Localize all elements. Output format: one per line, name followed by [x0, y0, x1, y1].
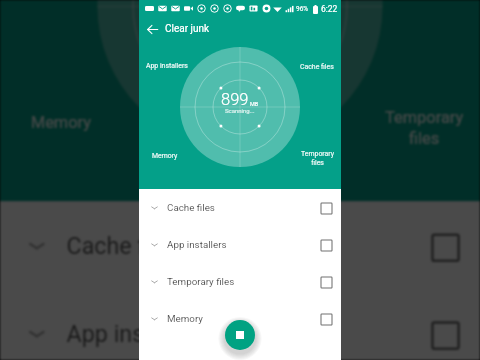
staticText: App installers: [146, 62, 188, 70]
staticText: MB: [250, 101, 259, 107]
button[interactable]: Stop scanning: [225, 320, 255, 350]
staticText: 899: [195, 0, 261, 11]
button[interactable]: Select Temporary files: [319, 275, 333, 289]
button[interactable]: Temporary files: [139, 263, 341, 300]
staticText: Clear junk: [165, 23, 210, 35]
staticText: Temporary files: [167, 276, 235, 287]
staticText: Memory: [31, 113, 93, 132]
staticText: Temporary files: [385, 109, 463, 147]
button[interactable]: Memory: [139, 300, 341, 337]
staticText: 899: [221, 90, 249, 109]
button[interactable]: Select Cache files: [428, 230, 461, 263]
staticText: App installers: [66, 320, 209, 346]
staticText: App installers: [167, 239, 227, 250]
button[interactable]: App installers: [0, 289, 480, 360]
staticText: 6:22: [321, 4, 338, 14]
staticText: Memory: [152, 152, 178, 160]
staticText: Scanning...: [225, 107, 255, 114]
button[interactable]: Select App installers: [319, 238, 333, 252]
button[interactable]: Select App installers: [428, 318, 461, 351]
staticText: Temporary files: [301, 150, 334, 166]
button[interactable]: App installers: [139, 226, 341, 263]
staticText: Cache files: [66, 232, 181, 258]
staticText: Memory: [167, 313, 203, 324]
staticText: Scanning...: [204, 6, 276, 23]
staticText: MB: [264, 0, 285, 7]
button[interactable]: Cache files: [139, 189, 341, 226]
staticText: 96%: [296, 5, 309, 13]
button[interactable]: Select Memory: [319, 312, 333, 326]
button[interactable]: Cache files: [0, 201, 480, 289]
staticText: Cache files: [167, 202, 215, 213]
button[interactable]: Select Cache files: [319, 201, 333, 215]
button[interactable]: Back: [142, 19, 163, 40]
staticText: Cache files: [300, 63, 334, 71]
